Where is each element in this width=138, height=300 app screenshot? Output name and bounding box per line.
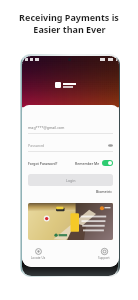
staticText: mag****@gmail.com (28, 125, 65, 130)
staticText: Support (98, 256, 110, 260)
staticText: Login (66, 178, 76, 183)
button[interactable]: Promotion banner (28, 203, 113, 240)
button[interactable]: Locate Us (30, 247, 47, 261)
staticText: Password (28, 143, 45, 148)
staticText: Remember Me (75, 161, 100, 166)
button[interactable]: Login (28, 174, 113, 186)
staticText: Easier than Ever (33, 23, 106, 35)
staticText: Receiving Payments is (19, 11, 119, 23)
button[interactable]: Support (97, 247, 111, 261)
button[interactable]: Biometric (96, 189, 113, 194)
button[interactable]: Forgot Password? (28, 161, 58, 166)
button[interactable]: Show password (108, 143, 113, 148)
button[interactable]: Remember Me (75, 160, 113, 166)
staticText: Locate Us (31, 256, 46, 260)
